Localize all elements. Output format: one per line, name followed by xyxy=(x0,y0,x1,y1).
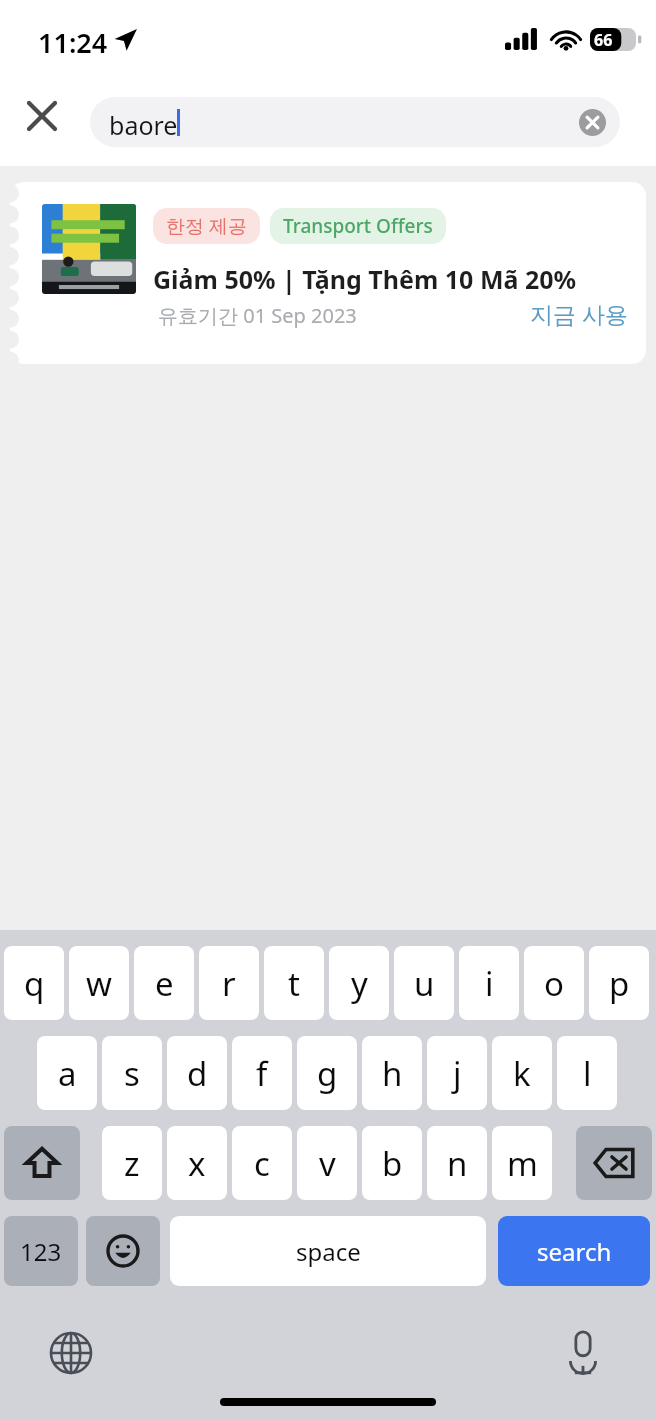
staticText: f xyxy=(256,1051,268,1096)
staticText: w xyxy=(86,961,112,1006)
staticText: Transport Offers xyxy=(283,213,433,239)
button[interactable]: 한정 제공 xyxy=(10,182,646,364)
staticText: Giảm 50% | Tặng Thêm 10 Mã 20% xyxy=(153,262,577,296)
button[interactable]: s xyxy=(102,1036,162,1110)
staticText: r xyxy=(222,961,236,1006)
staticText: l xyxy=(583,1051,592,1096)
button[interactable]: z xyxy=(102,1126,162,1200)
staticText: j xyxy=(453,1051,462,1096)
button[interactable]: n xyxy=(427,1126,487,1200)
button[interactable]: d xyxy=(167,1036,227,1110)
staticText: n xyxy=(447,1141,468,1186)
staticText: i xyxy=(485,961,494,1006)
staticText: s xyxy=(124,1051,140,1096)
staticText: h xyxy=(382,1051,403,1096)
staticText: m xyxy=(507,1141,538,1186)
button[interactable]: g xyxy=(297,1036,357,1110)
staticText: 한정 제공 xyxy=(166,213,247,239)
staticText: g xyxy=(317,1051,338,1096)
staticText: q xyxy=(24,961,45,1006)
staticText: 66 xyxy=(594,29,613,51)
button[interactable]: y xyxy=(329,946,389,1020)
button[interactable]: baore xyxy=(90,97,620,147)
staticText: p xyxy=(609,961,630,1006)
button[interactable]: w xyxy=(69,946,129,1020)
button[interactable]: space xyxy=(170,1216,486,1286)
staticText: 지금 사용 xyxy=(530,298,628,329)
staticText: v xyxy=(319,1141,336,1186)
button[interactable]: h xyxy=(362,1036,422,1110)
button[interactable]: m xyxy=(492,1126,552,1200)
button[interactable]: q xyxy=(4,946,64,1020)
button[interactable]: t xyxy=(264,946,324,1020)
button[interactable]: p xyxy=(589,946,649,1020)
button[interactable]: v xyxy=(297,1126,357,1200)
button[interactable]: f xyxy=(232,1036,292,1110)
button[interactable]: a xyxy=(37,1036,97,1110)
staticText: b xyxy=(382,1141,403,1186)
button[interactable]: x xyxy=(167,1126,227,1200)
button[interactable]: Dictate xyxy=(552,1322,614,1384)
staticText: d xyxy=(187,1051,208,1096)
staticText: u xyxy=(414,961,435,1006)
staticText: k xyxy=(513,1051,531,1096)
button[interactable]: b xyxy=(362,1126,422,1200)
button[interactable]: Clear text xyxy=(573,103,611,141)
staticText: 11:24 xyxy=(38,24,108,61)
staticText: space xyxy=(296,1235,361,1268)
staticText: z xyxy=(124,1141,140,1186)
button[interactable]: k xyxy=(492,1036,552,1110)
staticText: a xyxy=(58,1051,77,1096)
button[interactable]: u xyxy=(394,946,454,1020)
button[interactable]: Delete xyxy=(576,1126,652,1200)
button[interactable]: Numbers xyxy=(4,1216,78,1286)
button[interactable]: Change keyboard xyxy=(40,1322,102,1384)
staticText: x xyxy=(188,1141,206,1186)
button[interactable]: j xyxy=(427,1036,487,1110)
staticText: search xyxy=(537,1235,612,1268)
button[interactable]: i xyxy=(459,946,519,1020)
staticText: o xyxy=(544,961,564,1006)
staticText: c xyxy=(254,1141,270,1186)
button[interactable]: 지금 사용 xyxy=(530,298,628,329)
button[interactable]: l xyxy=(557,1036,617,1110)
staticText: y xyxy=(351,961,368,1006)
staticText: t xyxy=(288,961,300,1006)
staticText: baore xyxy=(109,108,178,142)
button[interactable]: Close xyxy=(14,88,70,144)
staticText: 유효기간 01 Sep 2023 xyxy=(158,302,357,329)
button[interactable]: Shift xyxy=(4,1126,80,1200)
staticText: e xyxy=(155,961,174,1006)
button[interactable]: Emoji xyxy=(86,1216,160,1286)
button[interactable]: o xyxy=(524,946,584,1020)
button[interactable]: e xyxy=(134,946,194,1020)
button[interactable]: r xyxy=(199,946,259,1020)
button[interactable]: c xyxy=(232,1126,292,1200)
staticText: 123 xyxy=(20,1235,62,1268)
button[interactable]: search xyxy=(498,1216,650,1286)
